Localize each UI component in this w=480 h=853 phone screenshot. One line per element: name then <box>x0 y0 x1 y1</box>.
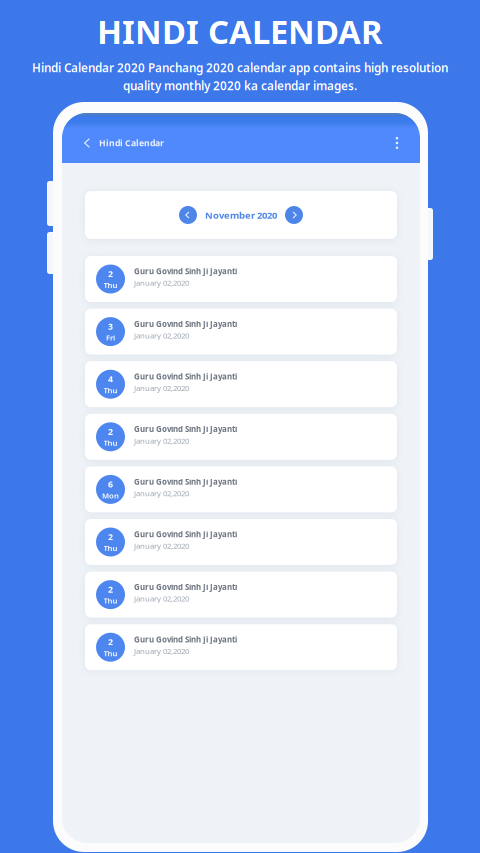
staticText: 2 <box>108 268 113 280</box>
button[interactable]: 6 <box>85 466 397 512</box>
staticText: January 02,2020 <box>134 646 189 656</box>
staticText: Hindi Calendar 2020 Panchang 2020 calend… <box>32 60 448 76</box>
button[interactable]: Previous month <box>179 206 197 224</box>
staticText: Guru Govind Sinh Ji Jayanti <box>134 634 237 645</box>
staticText: Thu <box>103 595 117 606</box>
staticText: January 02,2020 <box>134 330 189 341</box>
staticText: 2 <box>108 636 113 648</box>
staticText: Thu <box>103 543 117 553</box>
button[interactable]: Next month <box>285 206 303 224</box>
button[interactable]: 3 <box>85 309 397 355</box>
button[interactable]: 2 <box>85 624 397 670</box>
staticText: November 2020 <box>205 209 277 221</box>
button[interactable]: 2 <box>85 519 397 565</box>
staticText: Guru Govind Sinh Ji Jayanti <box>134 581 237 592</box>
staticText: January 02,2020 <box>134 435 189 446</box>
button[interactable]: Back <box>75 126 99 160</box>
staticText: Guru Govind Sinh Ji Jayanti <box>134 476 237 487</box>
staticText: 3 <box>108 320 113 332</box>
staticText: 2 <box>108 425 113 437</box>
staticText: Thu <box>103 280 117 290</box>
staticText: Thu <box>103 385 117 395</box>
staticText: 6 <box>108 478 113 490</box>
button[interactable]: 2 <box>85 414 397 460</box>
staticText: January 02,2020 <box>134 488 189 498</box>
staticText: 2 <box>108 583 113 595</box>
staticText: Guru Govind Sinh Ji Jayanti <box>134 371 237 382</box>
staticText: 2 <box>108 531 113 543</box>
button[interactable]: 2 <box>85 572 397 618</box>
staticText: HINDI CALENDAR <box>97 9 383 54</box>
staticText: Thu <box>103 437 117 448</box>
staticText: Fri <box>106 332 115 343</box>
staticText: Guru Govind Sinh Ji Jayanti <box>134 424 237 434</box>
staticText: January 02,2020 <box>134 541 189 551</box>
button[interactable]: 2 <box>85 256 397 302</box>
staticText: Mon <box>102 490 119 501</box>
staticText: Guru Govind Sinh Ji Jayanti <box>134 266 237 277</box>
staticText: Guru Govind Sinh Ji Jayanti <box>134 529 237 540</box>
staticText: January 02,2020 <box>134 383 189 393</box>
staticText: January 02,2020 <box>134 278 189 288</box>
staticText: Hindi Calendar <box>99 137 164 149</box>
button[interactable]: 4 <box>85 361 397 407</box>
staticText: Thu <box>103 648 117 658</box>
staticText: January 02,2020 <box>134 593 189 604</box>
staticText: Guru Govind Sinh Ji Jayanti <box>134 318 237 329</box>
button[interactable]: More options <box>385 126 409 160</box>
staticText: quality monthly 2020 ka calendar images. <box>123 78 357 94</box>
staticText: 4 <box>108 373 113 385</box>
